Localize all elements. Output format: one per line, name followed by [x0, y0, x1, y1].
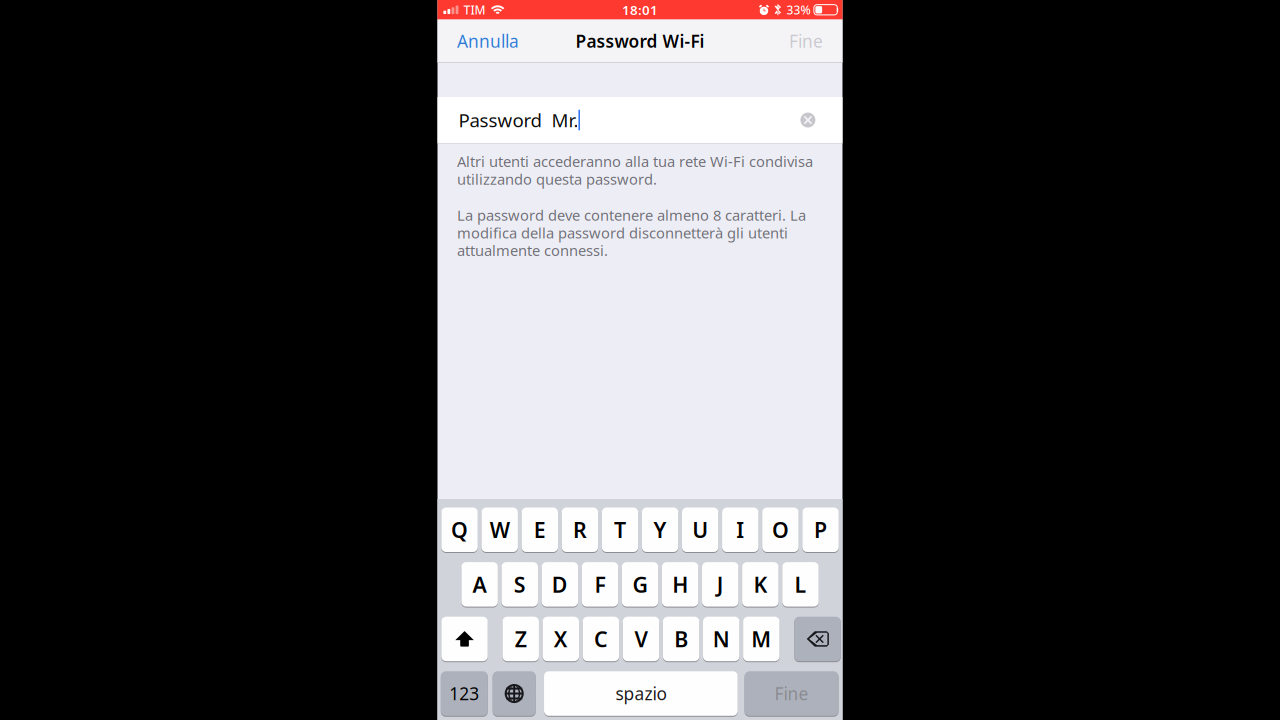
button[interactable]: O	[762, 507, 799, 552]
staticText: J	[717, 570, 724, 598]
staticText: G	[632, 570, 647, 598]
button[interactable]: Fine	[785, 19, 827, 63]
staticText: Altri utenti accederanno alla tua rete W…	[457, 152, 813, 189]
button[interactable]: M	[743, 616, 780, 662]
staticText: S	[514, 570, 526, 598]
button[interactable]: Fine	[745, 671, 838, 716]
staticText: L	[794, 570, 806, 598]
button[interactable]: Y	[642, 507, 678, 552]
staticText: La password deve contenere almeno 8 cara…	[457, 205, 806, 260]
staticText: U	[692, 516, 708, 544]
button[interactable]: E	[521, 507, 558, 552]
staticText: N	[713, 625, 730, 653]
staticText: Z	[515, 625, 527, 653]
button[interactable]: N	[703, 616, 739, 662]
button[interactable]: G	[622, 562, 658, 607]
button[interactable]: Annulla	[453, 19, 523, 63]
staticText: 18:01	[622, 1, 658, 19]
staticText: V	[634, 625, 647, 653]
button[interactable]: J	[702, 562, 738, 607]
button[interactable]: L	[782, 562, 819, 607]
button[interactable]: R	[562, 507, 598, 552]
staticText: I	[736, 516, 744, 544]
staticText: K	[753, 570, 767, 598]
staticText: X	[554, 625, 568, 653]
staticText: Fine	[774, 682, 808, 705]
button[interactable]: F	[582, 562, 618, 607]
button[interactable]: Shift	[441, 616, 488, 662]
staticText: O	[772, 516, 789, 544]
staticText: C	[594, 625, 608, 653]
staticText: T	[614, 516, 626, 544]
button[interactable]: Next keyboard	[493, 671, 536, 716]
staticText: W	[490, 516, 510, 544]
button[interactable]: Clear text	[800, 112, 815, 127]
button[interactable]: Delete	[794, 616, 841, 662]
staticText: spazio	[615, 682, 666, 705]
button[interactable]: V	[623, 616, 659, 662]
button[interactable]: U	[682, 507, 718, 552]
staticText: Y	[654, 516, 667, 544]
button[interactable]: X	[543, 616, 579, 662]
button[interactable]: K	[742, 562, 779, 607]
staticText: Q	[451, 516, 468, 544]
staticText: A	[473, 570, 487, 598]
staticText: D	[552, 570, 568, 598]
staticText: Annulla	[457, 30, 519, 53]
button[interactable]: P	[802, 507, 839, 552]
button[interactable]: T	[602, 507, 638, 552]
button[interactable]: I	[722, 507, 759, 552]
button[interactable]: B	[663, 616, 699, 662]
staticText: Password Mr.	[458, 108, 578, 132]
button[interactable]: D	[542, 562, 578, 607]
staticText: H	[672, 570, 688, 598]
button[interactable]: C	[583, 616, 619, 662]
button[interactable]: H	[662, 562, 698, 607]
button[interactable]: S	[501, 562, 538, 607]
staticText: Password Wi-Fi	[575, 30, 704, 53]
staticText: TIM	[463, 2, 485, 18]
staticText: R	[573, 516, 587, 544]
staticText: M	[751, 625, 771, 653]
staticText: B	[674, 625, 688, 653]
staticText: P	[814, 516, 827, 544]
staticText: E	[534, 516, 546, 544]
button[interactable]: Q	[441, 507, 478, 552]
button[interactable]: spazio	[544, 671, 738, 716]
button[interactable]: A	[461, 562, 498, 607]
button[interactable]: W	[481, 507, 518, 552]
button[interactable]: 123	[441, 671, 488, 716]
staticText: 33%	[786, 2, 810, 18]
staticText: F	[594, 570, 605, 598]
button[interactable]: Z	[502, 616, 539, 662]
staticText: Fine	[789, 30, 823, 53]
staticText: 123	[449, 682, 479, 705]
